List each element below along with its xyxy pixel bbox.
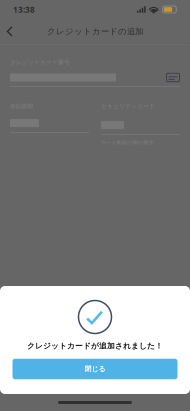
- staticText: クレジットカードが追加されました！: [27, 341, 163, 351]
- staticText: カード裏面の3桁の数字: [101, 139, 154, 146]
- button[interactable]: カードをスキャン: [166, 73, 180, 82]
- button[interactable]: 閉じる: [12, 359, 177, 379]
- staticText: クレジットカード番号: [10, 59, 70, 66]
- staticText: セキュリティコード: [101, 103, 155, 110]
- staticText: 有効期限: [10, 103, 34, 110]
- button[interactable]: 戻る: [0, 20, 20, 42]
- staticText: 閉じる: [84, 365, 105, 373]
- staticText: クレジットカードの追加: [47, 26, 143, 37]
- staticText: 13:38: [13, 4, 35, 15]
